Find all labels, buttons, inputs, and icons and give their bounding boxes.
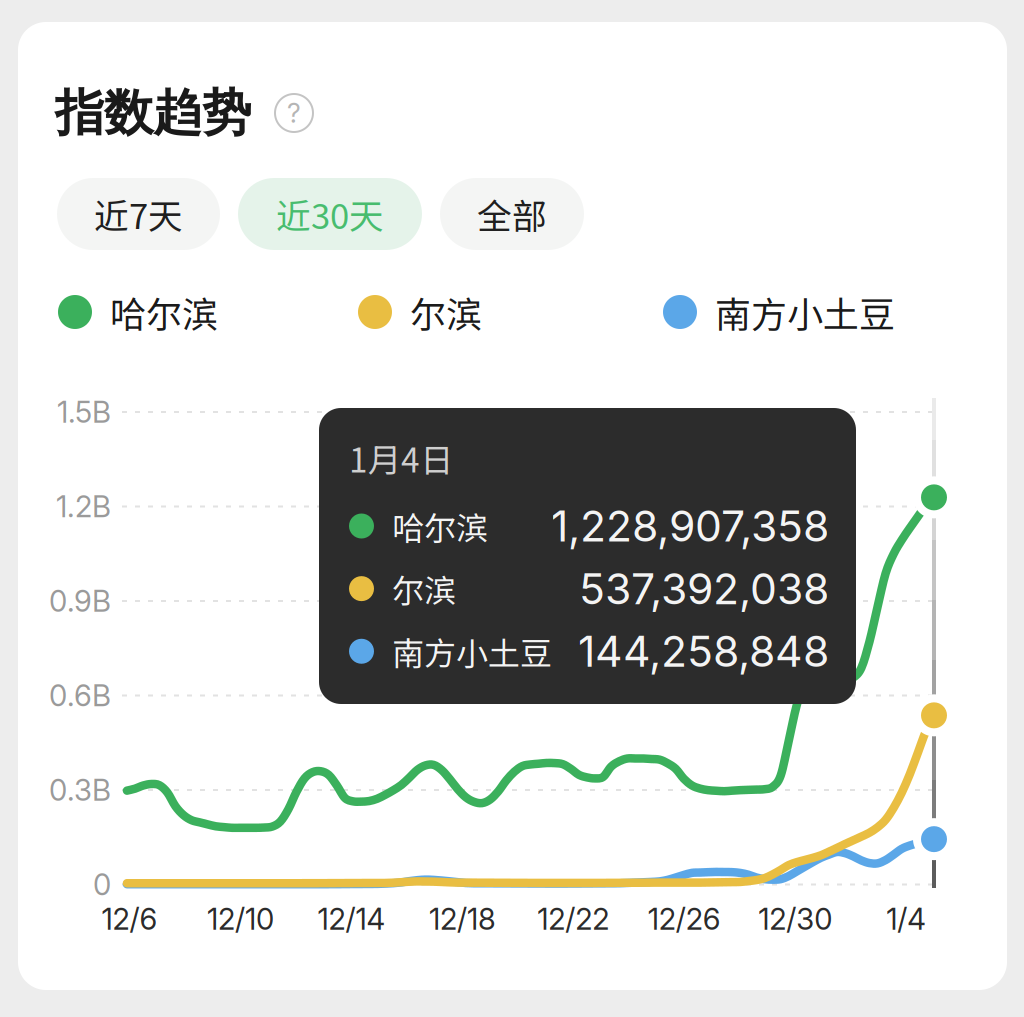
staticText: 尔滨 (392, 565, 456, 612)
staticText: 哈尔滨 (110, 286, 218, 338)
button[interactable]: 近7天 (57, 178, 220, 250)
staticText: 12/10 (207, 901, 274, 937)
staticText: 0.3B (49, 772, 111, 808)
staticText: 0.6B (49, 678, 111, 713)
staticText: 12/22 (537, 901, 609, 937)
staticText: ? (287, 97, 301, 129)
staticText: 近7天 (94, 189, 183, 239)
staticText: 144,258,848 (578, 625, 829, 677)
staticText: 哈尔滨 (392, 503, 488, 549)
staticText: 12/14 (317, 901, 385, 937)
staticText: 0 (93, 867, 111, 902)
staticText: 12/6 (101, 901, 157, 937)
staticText: 0.9B (49, 583, 111, 619)
button[interactable]: About the trend index (275, 94, 313, 132)
staticText: 1.2B (56, 489, 111, 524)
staticText: 1/4 (886, 901, 926, 937)
staticText: 12/30 (758, 901, 832, 937)
button[interactable]: 近30天 (238, 178, 422, 250)
staticText: 南方小土豆 (392, 628, 552, 674)
staticText: 近30天 (276, 189, 384, 239)
staticText: 12/26 (648, 901, 721, 937)
staticText: 全部 (477, 189, 547, 239)
staticText: 尔滨 (410, 286, 482, 338)
staticText: 指数趋势 (55, 82, 251, 144)
staticText: 南方小土豆 (715, 286, 895, 338)
staticText: 537,392,038 (579, 563, 829, 614)
staticText: 12/18 (429, 901, 496, 937)
staticText: 1.5B (57, 394, 111, 430)
button[interactable]: 全部 (440, 178, 584, 250)
staticText: 1,228,907,358 (551, 500, 829, 552)
staticText: 1月4日 (349, 434, 453, 482)
